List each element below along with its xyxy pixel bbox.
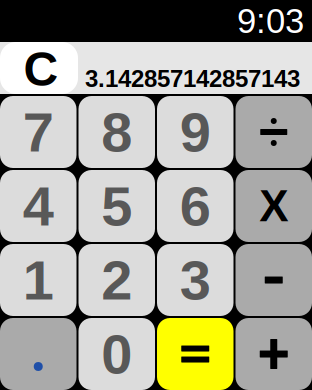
staticText: 8 <box>101 101 132 163</box>
staticText: 6 <box>180 175 211 237</box>
staticText: 4 <box>23 175 54 237</box>
staticText: C <box>23 42 58 96</box>
button[interactable]: 2 <box>78 244 155 316</box>
staticText: 3.142857142857143 <box>85 65 300 92</box>
staticText: 3 <box>180 249 211 311</box>
button[interactable]: Decimal point <box>0 318 76 390</box>
button[interactable]: 4 <box>0 170 76 242</box>
button[interactable]: 3 <box>157 244 233 316</box>
staticText: 9:03 <box>237 2 304 40</box>
button[interactable]: 1 <box>0 244 76 316</box>
button[interactable]: Divide <box>235 96 312 168</box>
button[interactable]: 6 <box>157 170 233 242</box>
staticText: X <box>259 181 288 231</box>
button[interactable]: Subtract <box>235 244 312 316</box>
staticText: 0 <box>101 323 132 385</box>
button[interactable]: 5 <box>78 170 155 242</box>
staticText: 9 <box>180 101 211 163</box>
button[interactable]: Equals <box>157 318 233 390</box>
button[interactable]: 7 <box>0 96 76 168</box>
button[interactable]: Add <box>235 318 312 390</box>
staticText: 7 <box>23 101 54 163</box>
button[interactable]: 8 <box>78 96 155 168</box>
button[interactable]: Multiply <box>235 170 312 242</box>
staticText: 1 <box>23 249 54 311</box>
button[interactable]: C <box>0 42 78 94</box>
staticText: 2 <box>101 249 132 311</box>
button[interactable]: 9 <box>157 96 233 168</box>
button[interactable]: 0 <box>78 318 155 390</box>
staticText: 5 <box>101 175 132 237</box>
